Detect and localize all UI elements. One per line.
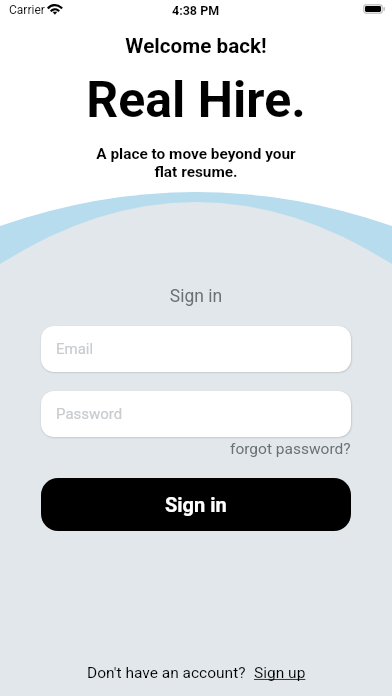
staticText: Welcome back! bbox=[0, 34, 392, 58]
button[interactable]: Sign up bbox=[246, 664, 306, 682]
staticText: Sign in bbox=[165, 493, 227, 516]
staticText: forgot password? bbox=[230, 440, 351, 458]
button[interactable]: Password bbox=[41, 391, 351, 437]
button[interactable]: forgot password? bbox=[220, 437, 351, 461]
staticText: 4:38 PM bbox=[172, 3, 220, 18]
staticText: Email bbox=[56, 340, 94, 358]
other: Battery bbox=[363, 4, 386, 15]
staticText: Sign in bbox=[0, 286, 392, 307]
staticText: Carrier bbox=[9, 3, 45, 17]
button[interactable]: Email bbox=[41, 326, 351, 372]
other: Wi-Fi bbox=[47, 3, 63, 15]
staticText: Real Hire. bbox=[0, 71, 392, 130]
staticText: A place to move beyond your flat resume. bbox=[0, 145, 392, 181]
staticText: Sign up bbox=[254, 664, 306, 682]
button[interactable]: Sign in bbox=[41, 478, 351, 531]
staticText: Don't have an account? bbox=[87, 664, 246, 682]
staticText: Password bbox=[56, 405, 123, 423]
